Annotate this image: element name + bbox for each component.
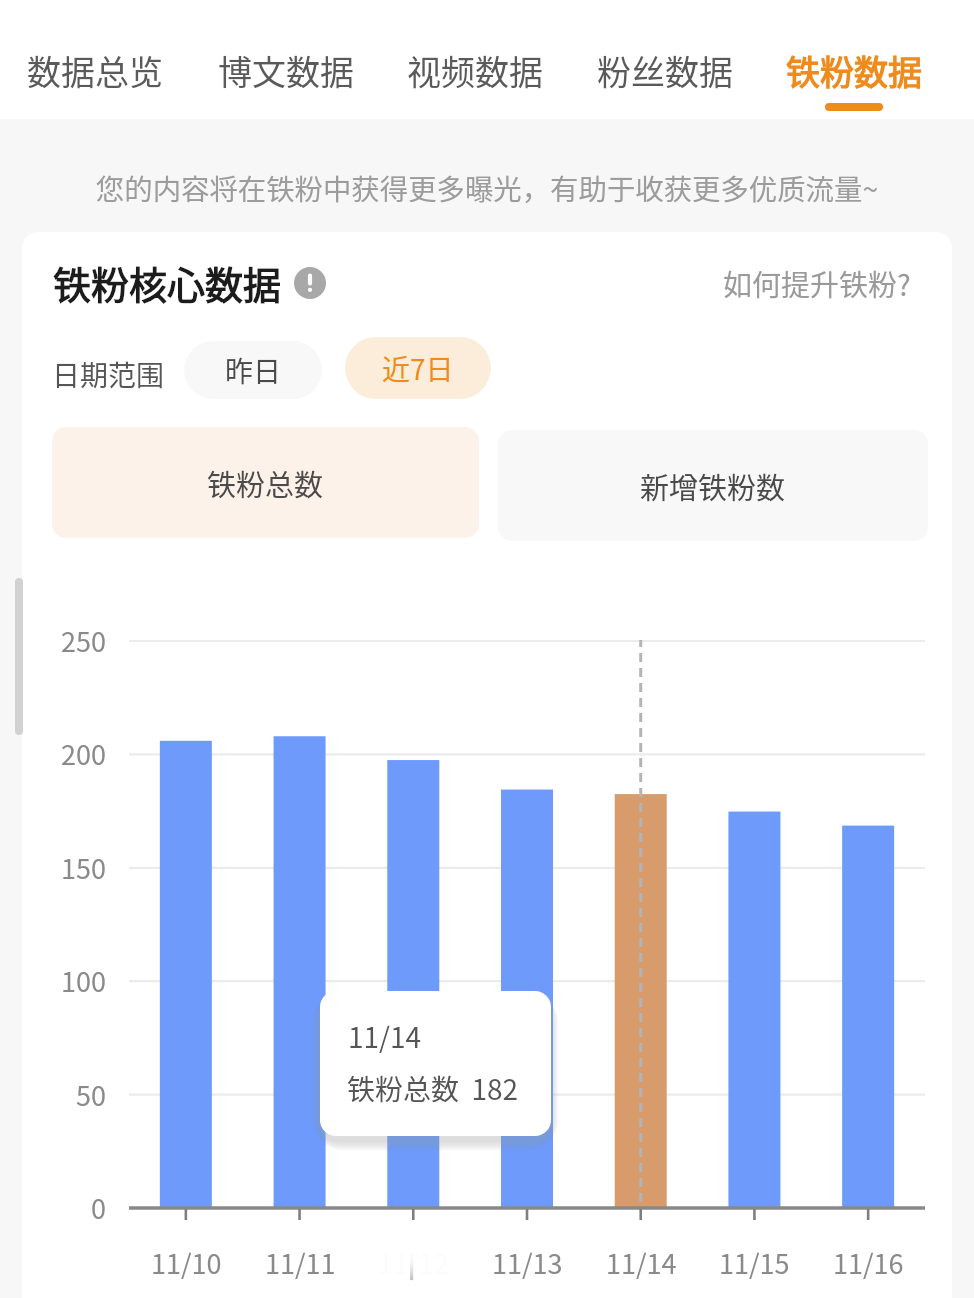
staticText: 日期范围 bbox=[52, 354, 165, 395]
button[interactable]: 新增铁粉数 bbox=[498, 430, 928, 541]
button[interactable]: 近7日 bbox=[345, 337, 491, 399]
staticText: 铁粉总数 182 bbox=[347, 1068, 519, 1109]
staticText: 50 bbox=[76, 1075, 106, 1114]
staticText: 11/13 bbox=[492, 1243, 563, 1282]
staticText: 您的内容将在铁粉中获得更多曝光，有助于收获更多优质流量~ bbox=[0, 167, 974, 208]
button[interactable]: 视频数据 bbox=[390, 0, 560, 119]
other: 说明 bbox=[294, 267, 326, 299]
staticText: 250 bbox=[61, 621, 106, 660]
staticText: 11/12 bbox=[378, 1243, 449, 1282]
staticText: 11/14 bbox=[348, 1016, 422, 1057]
button[interactable]: 数据总览 bbox=[10, 0, 180, 119]
staticText: 11/10 bbox=[151, 1243, 222, 1282]
staticText: 0 bbox=[91, 1188, 106, 1227]
staticText: 如何提升铁粉? bbox=[723, 262, 911, 304]
staticText: 粉丝数据 bbox=[597, 46, 733, 95]
staticText: 昨日 bbox=[225, 350, 282, 391]
staticText: 博文数据 bbox=[218, 46, 354, 95]
button[interactable]: 如何提升铁粉? bbox=[723, 262, 911, 304]
staticText: 100 bbox=[61, 961, 106, 1000]
button[interactable]: 铁粉数据 bbox=[769, 0, 939, 119]
button[interactable]: 11/14 bbox=[320, 991, 551, 1136]
staticText: 视频数据 bbox=[407, 46, 543, 95]
button[interactable]: 铁粉总数 bbox=[52, 427, 479, 538]
staticText: 近7日 bbox=[382, 348, 454, 389]
button[interactable]: 粉丝数据 bbox=[580, 0, 750, 119]
staticText: 铁粉数据 bbox=[786, 46, 922, 95]
staticText: 新增铁粉数 bbox=[640, 465, 786, 507]
staticText: 铁粉核心数据 bbox=[53, 255, 282, 310]
button[interactable]: 铁粉核心数据 bbox=[53, 255, 326, 310]
staticText: 11/11 bbox=[265, 1243, 336, 1282]
staticText: 铁粉总数 bbox=[207, 462, 324, 504]
staticText: 11/14 bbox=[606, 1243, 677, 1282]
staticText: 11/16 bbox=[833, 1243, 904, 1282]
staticText: 数据总览 bbox=[27, 46, 163, 95]
staticText: 150 bbox=[61, 848, 106, 887]
staticText: 11/15 bbox=[719, 1243, 790, 1282]
staticText: 200 bbox=[61, 734, 106, 773]
button[interactable]: 昨日 bbox=[184, 341, 322, 399]
button[interactable]: 博文数据 bbox=[201, 0, 371, 119]
